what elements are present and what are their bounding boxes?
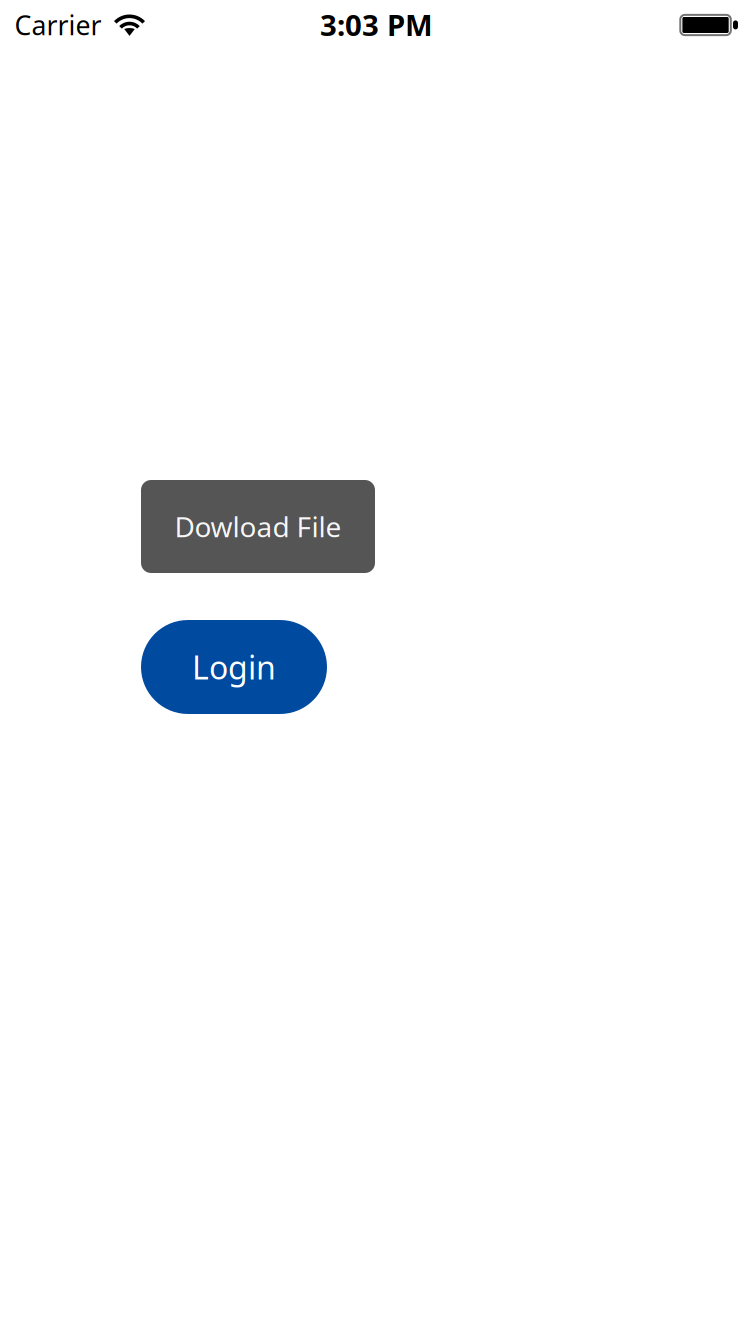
staticText: Carrier bbox=[14, 7, 101, 43]
button[interactable]: Login bbox=[141, 620, 327, 714]
staticText: Dowload File bbox=[174, 508, 341, 545]
staticText: 3:03 PM bbox=[320, 5, 433, 44]
staticText: Login bbox=[192, 646, 276, 688]
button[interactable]: Dowload File bbox=[141, 480, 375, 573]
